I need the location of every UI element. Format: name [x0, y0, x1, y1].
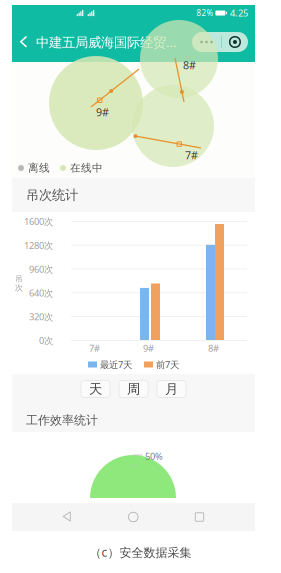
staticText: 吊次统计 — [26, 187, 78, 203]
staticText: 8# — [208, 342, 219, 354]
staticText: 工作效率统计 — [26, 413, 98, 428]
staticText: 1280次 — [24, 239, 53, 251]
staticText: （c）安全数据采集 — [89, 544, 191, 560]
staticText: 次 — [15, 283, 23, 293]
staticText: 离线 — [28, 161, 50, 174]
button[interactable]: Recents — [189, 507, 210, 527]
button[interactable]: 周 — [119, 380, 148, 397]
staticText: 50% — [145, 450, 163, 462]
button[interactable]: 月 — [157, 380, 186, 397]
button[interactable]: Back — [57, 506, 77, 528]
staticText: 吊 — [15, 274, 23, 284]
staticText: 前7天 — [156, 358, 179, 371]
staticText: 周 — [127, 381, 140, 397]
staticText: 0次 — [39, 334, 53, 347]
staticText: 中建五局威海国际经贸… — [36, 33, 177, 51]
button[interactable]: 天 — [81, 380, 110, 397]
button[interactable]: Back — [12, 29, 36, 55]
staticText: 1600次 — [24, 215, 53, 228]
staticText: 9# — [96, 105, 109, 119]
staticText: 天 — [89, 381, 102, 397]
staticText: 9# — [143, 342, 154, 354]
staticText: 82% — [196, 8, 213, 18]
staticText: 320次 — [29, 310, 53, 323]
staticText: 在线中 — [70, 161, 103, 174]
staticText: 最近7天 — [100, 358, 132, 371]
staticText: 月 — [165, 381, 178, 397]
button[interactable]: Mini program menu — [192, 32, 248, 52]
staticText: 7# — [89, 342, 100, 354]
button[interactable]: Home — [122, 506, 144, 528]
staticText: 640次 — [29, 287, 53, 299]
staticText: 4.25 — [230, 7, 248, 19]
staticText: 8# — [183, 58, 196, 72]
staticText: 960次 — [29, 263, 53, 275]
staticText: 7# — [185, 148, 198, 162]
